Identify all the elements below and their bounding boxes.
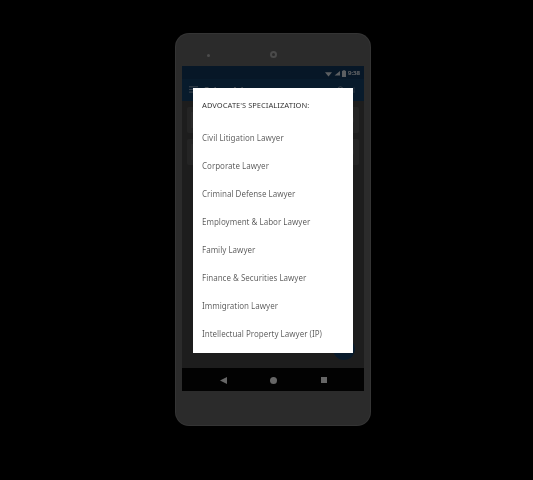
button[interactable]: Open navigation menu: [187, 84, 199, 96]
staticText: 9:38: [348, 69, 360, 77]
button[interactable]: Home: [263, 370, 283, 390]
button[interactable]: Recent apps: [314, 370, 334, 390]
button[interactable]: More options: [348, 84, 360, 96]
button[interactable]: Employment & Labor Lawyer: [193, 207, 353, 235]
button[interactable]: Finance & Securities Lawyer: [193, 263, 353, 291]
staticText: Corporate Lawyer: [202, 160, 269, 171]
button[interactable]: Add: [333, 338, 355, 360]
button[interactable]: [187, 139, 359, 165]
button[interactable]: Intellectual Property Lawyer (IP): [193, 319, 353, 347]
button[interactable]: Back: [213, 370, 233, 390]
staticText: Family Lawyer: [202, 244, 256, 255]
staticText: Finance & Securities Lawyer: [202, 272, 307, 283]
staticText: Immigration Lawyer: [202, 300, 278, 311]
staticText: Select Advocate: [204, 84, 272, 96]
button[interactable]: Corporate Lawyer: [193, 151, 353, 179]
button[interactable]: Search: [334, 83, 348, 97]
staticText: ADVOCATE'S SPECIALIZATION:: [202, 100, 310, 110]
button[interactable]: Immigration Lawyer: [193, 291, 353, 319]
staticText: Intellectual Property Lawyer (IP): [202, 328, 322, 339]
button[interactable]: Civil Litigation Lawyer: [193, 123, 353, 151]
button[interactable]: Criminal Defense Lawyer: [193, 179, 353, 207]
staticText: Criminal Defense Lawyer: [202, 188, 296, 199]
button[interactable]: Family Lawyer: [193, 235, 353, 263]
button[interactable]: [187, 107, 359, 133]
staticText: Civil Litigation Lawyer: [202, 132, 284, 143]
staticText: Employment & Labor Lawyer: [202, 216, 311, 227]
